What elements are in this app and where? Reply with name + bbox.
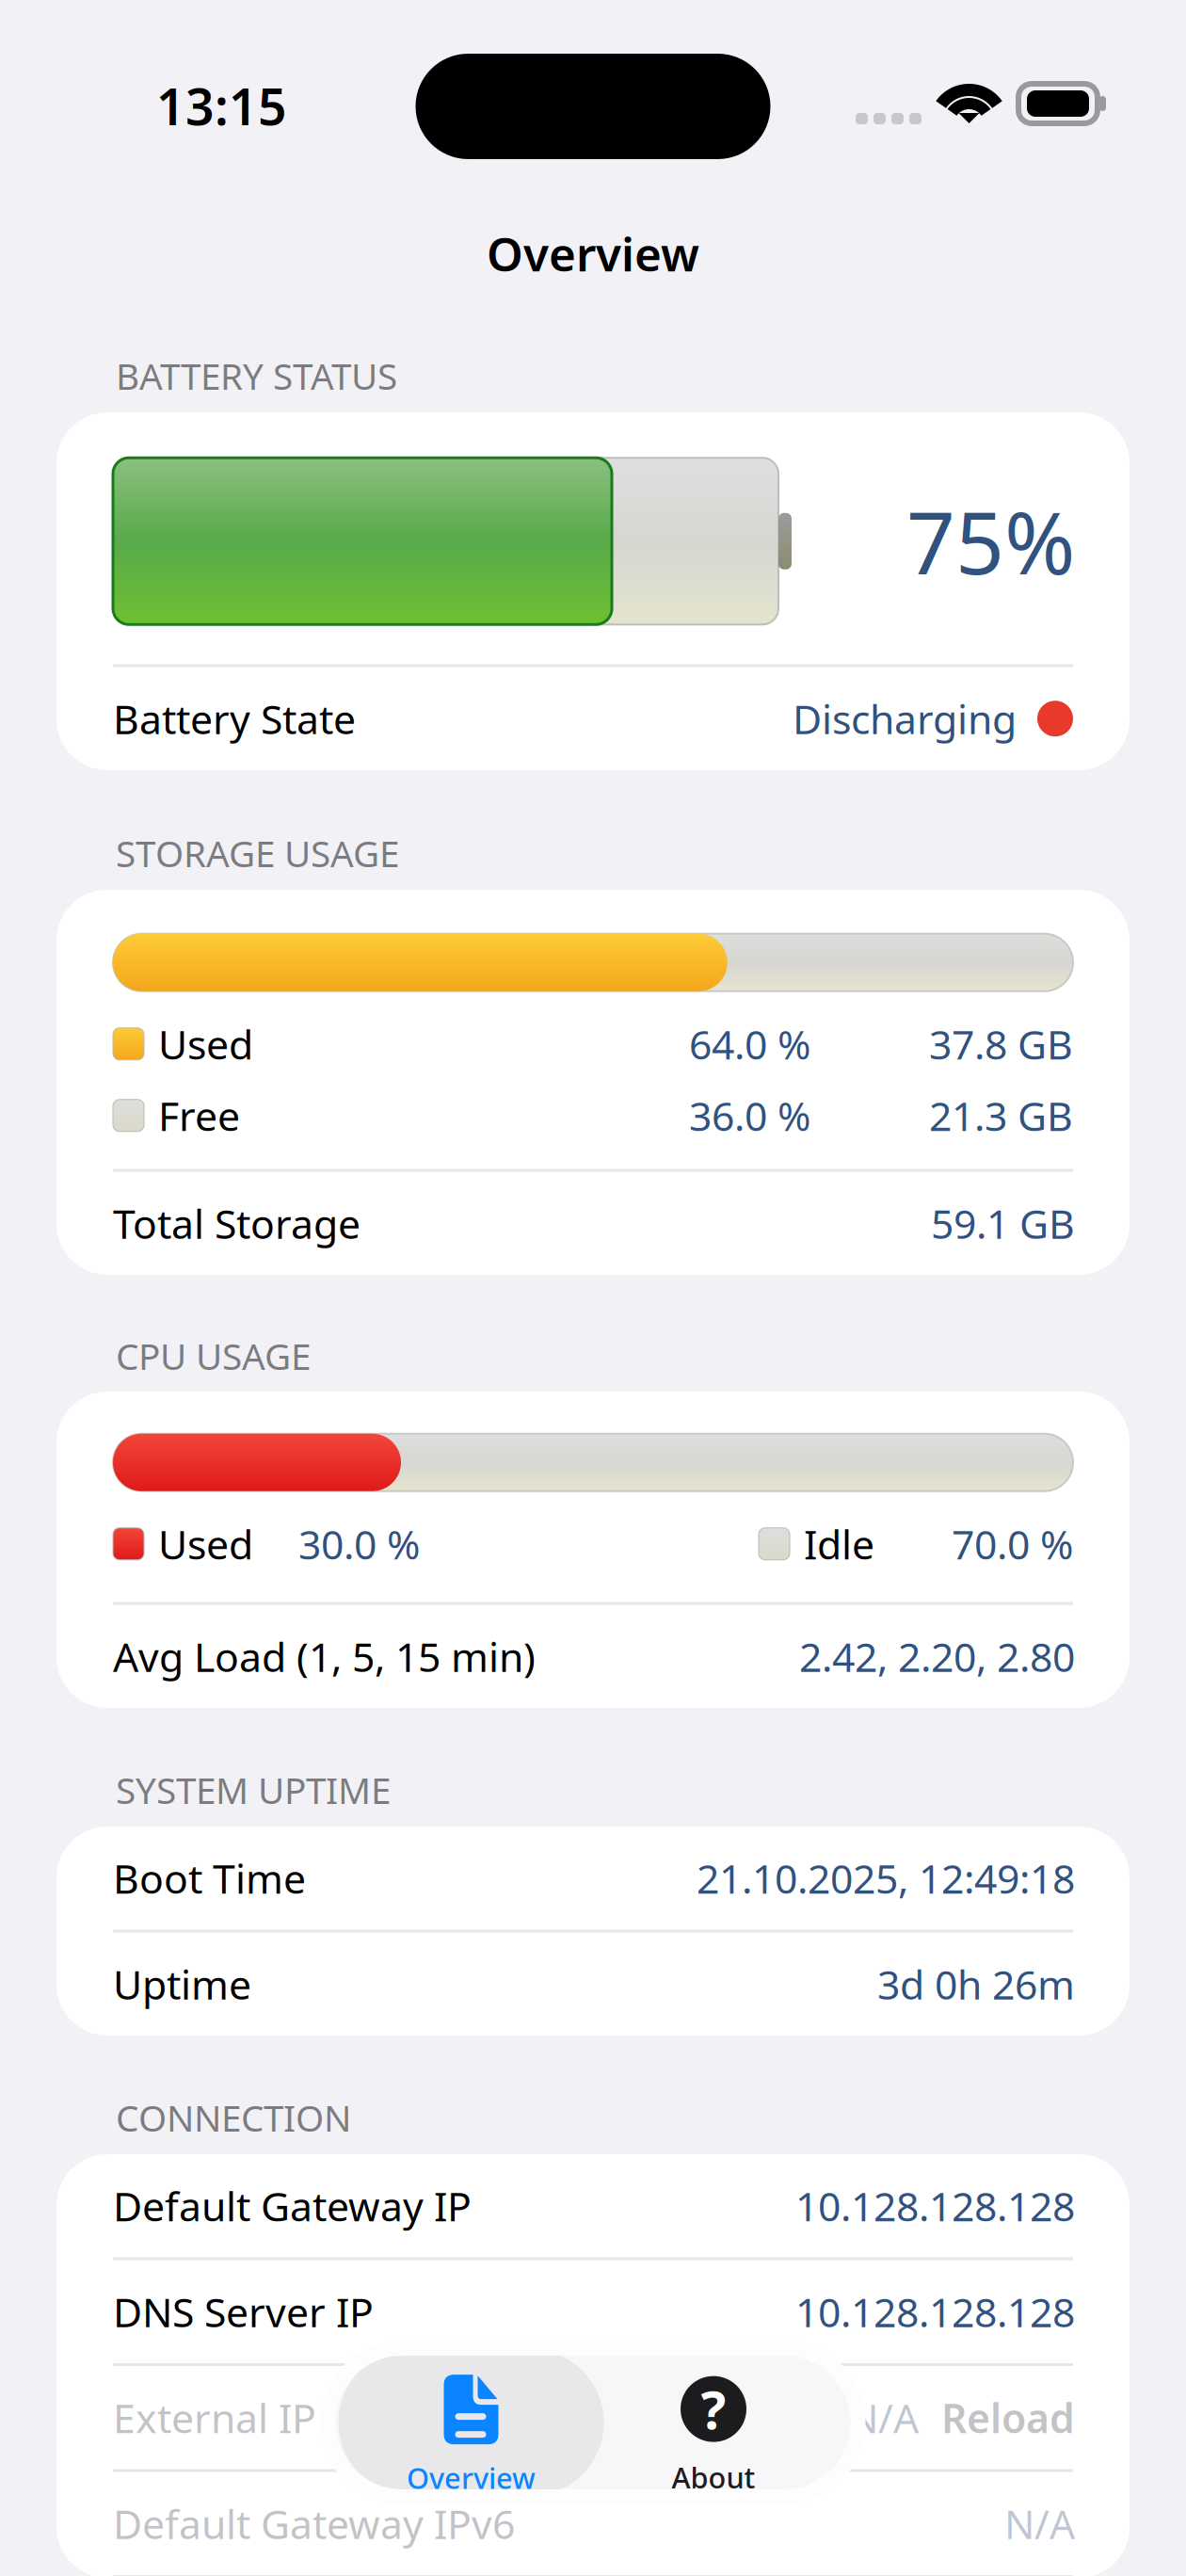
staticText: External IP — [113, 2391, 316, 2444]
staticText: Default Gateway IPv6 — [113, 2497, 515, 2550]
staticText: Reload — [941, 2391, 1075, 2444]
staticText: 37.8 GB — [929, 1017, 1073, 1071]
staticText: 3d 0h 26m — [877, 1957, 1075, 2011]
staticText: 59.1 GB — [931, 1197, 1075, 1250]
staticText: 21.10.2025, 12:49:18 — [697, 1851, 1075, 1905]
staticText: Overview — [487, 222, 699, 284]
staticText: Discharging — [793, 692, 1017, 745]
staticText: Avg Load (1, 5, 15 min) — [113, 1630, 536, 1683]
staticText: 10.128.128.128 — [795, 2179, 1075, 2232]
staticText: Idle — [804, 1517, 874, 1571]
staticText: DNS Server IP — [113, 2285, 374, 2338]
staticText: Used — [158, 1017, 253, 1071]
staticText: 10.128.128.128 — [795, 2285, 1075, 2338]
staticText: STORAGE USAGE — [116, 829, 399, 877]
staticText: Total Storage — [113, 1197, 361, 1250]
staticText: Default Gateway IP — [113, 2179, 472, 2232]
staticText: BATTERY STATUS — [116, 351, 397, 400]
staticText: CPU USAGE — [116, 1332, 311, 1380]
button[interactable]: Reload — [941, 2391, 1075, 2444]
staticText: N/A — [1004, 2497, 1075, 2550]
staticText: Battery State — [113, 692, 356, 745]
button[interactable]: ? — [604, 2349, 823, 2496]
staticText: 21.3 GB — [929, 1089, 1073, 1142]
staticText: 70.0 % — [952, 1517, 1073, 1571]
staticText: Uptime — [113, 1957, 251, 2011]
staticText: Free — [158, 1089, 240, 1142]
staticText: 75% — [906, 484, 1075, 598]
staticText: Overview — [407, 2458, 536, 2497]
staticText: ? — [701, 2374, 726, 2444]
staticText: About — [672, 2458, 755, 2496]
staticText: Boot Time — [113, 1851, 306, 1905]
staticText: 64.0 % — [689, 1017, 810, 1071]
staticText: CONNECTION — [116, 2093, 351, 2142]
staticText: N/A — [848, 2391, 919, 2444]
staticText: 36.0 % — [689, 1089, 810, 1142]
staticText: 13:15 — [156, 72, 287, 139]
staticText: 2.42, 2.20, 2.80 — [799, 1630, 1075, 1683]
staticText: Used — [158, 1517, 253, 1571]
staticText: SYSTEM UPTIME — [116, 1766, 391, 1814]
button[interactable]: Overview — [338, 2349, 604, 2496]
staticText: 30.0 % — [298, 1517, 420, 1571]
